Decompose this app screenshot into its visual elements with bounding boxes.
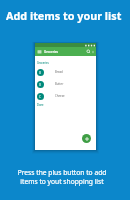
button[interactable]: C: [35, 90, 96, 102]
staticText: Cheese: [55, 94, 65, 98]
staticText: C: [39, 95, 42, 99]
staticText: Butter: [55, 82, 64, 86]
button[interactable]: Open navigation menu: [37, 49, 42, 54]
staticText: Add items to your list: [6, 8, 122, 23]
staticText: Groceries: [37, 61, 49, 65]
button[interactable]: B: [35, 78, 96, 90]
staticText: B: [39, 83, 42, 87]
staticText: B: [39, 71, 42, 75]
button[interactable]: More options: [91, 50, 95, 54]
staticText: Bread: [55, 70, 63, 74]
button[interactable]: Search: [86, 49, 91, 54]
button[interactable]: Add item: [82, 134, 91, 143]
staticText: Press the plus button to add items to yo…: [14, 168, 110, 186]
staticText: Done: [37, 103, 44, 107]
button[interactable]: B: [35, 66, 96, 78]
staticText: Groceries: [44, 50, 59, 54]
